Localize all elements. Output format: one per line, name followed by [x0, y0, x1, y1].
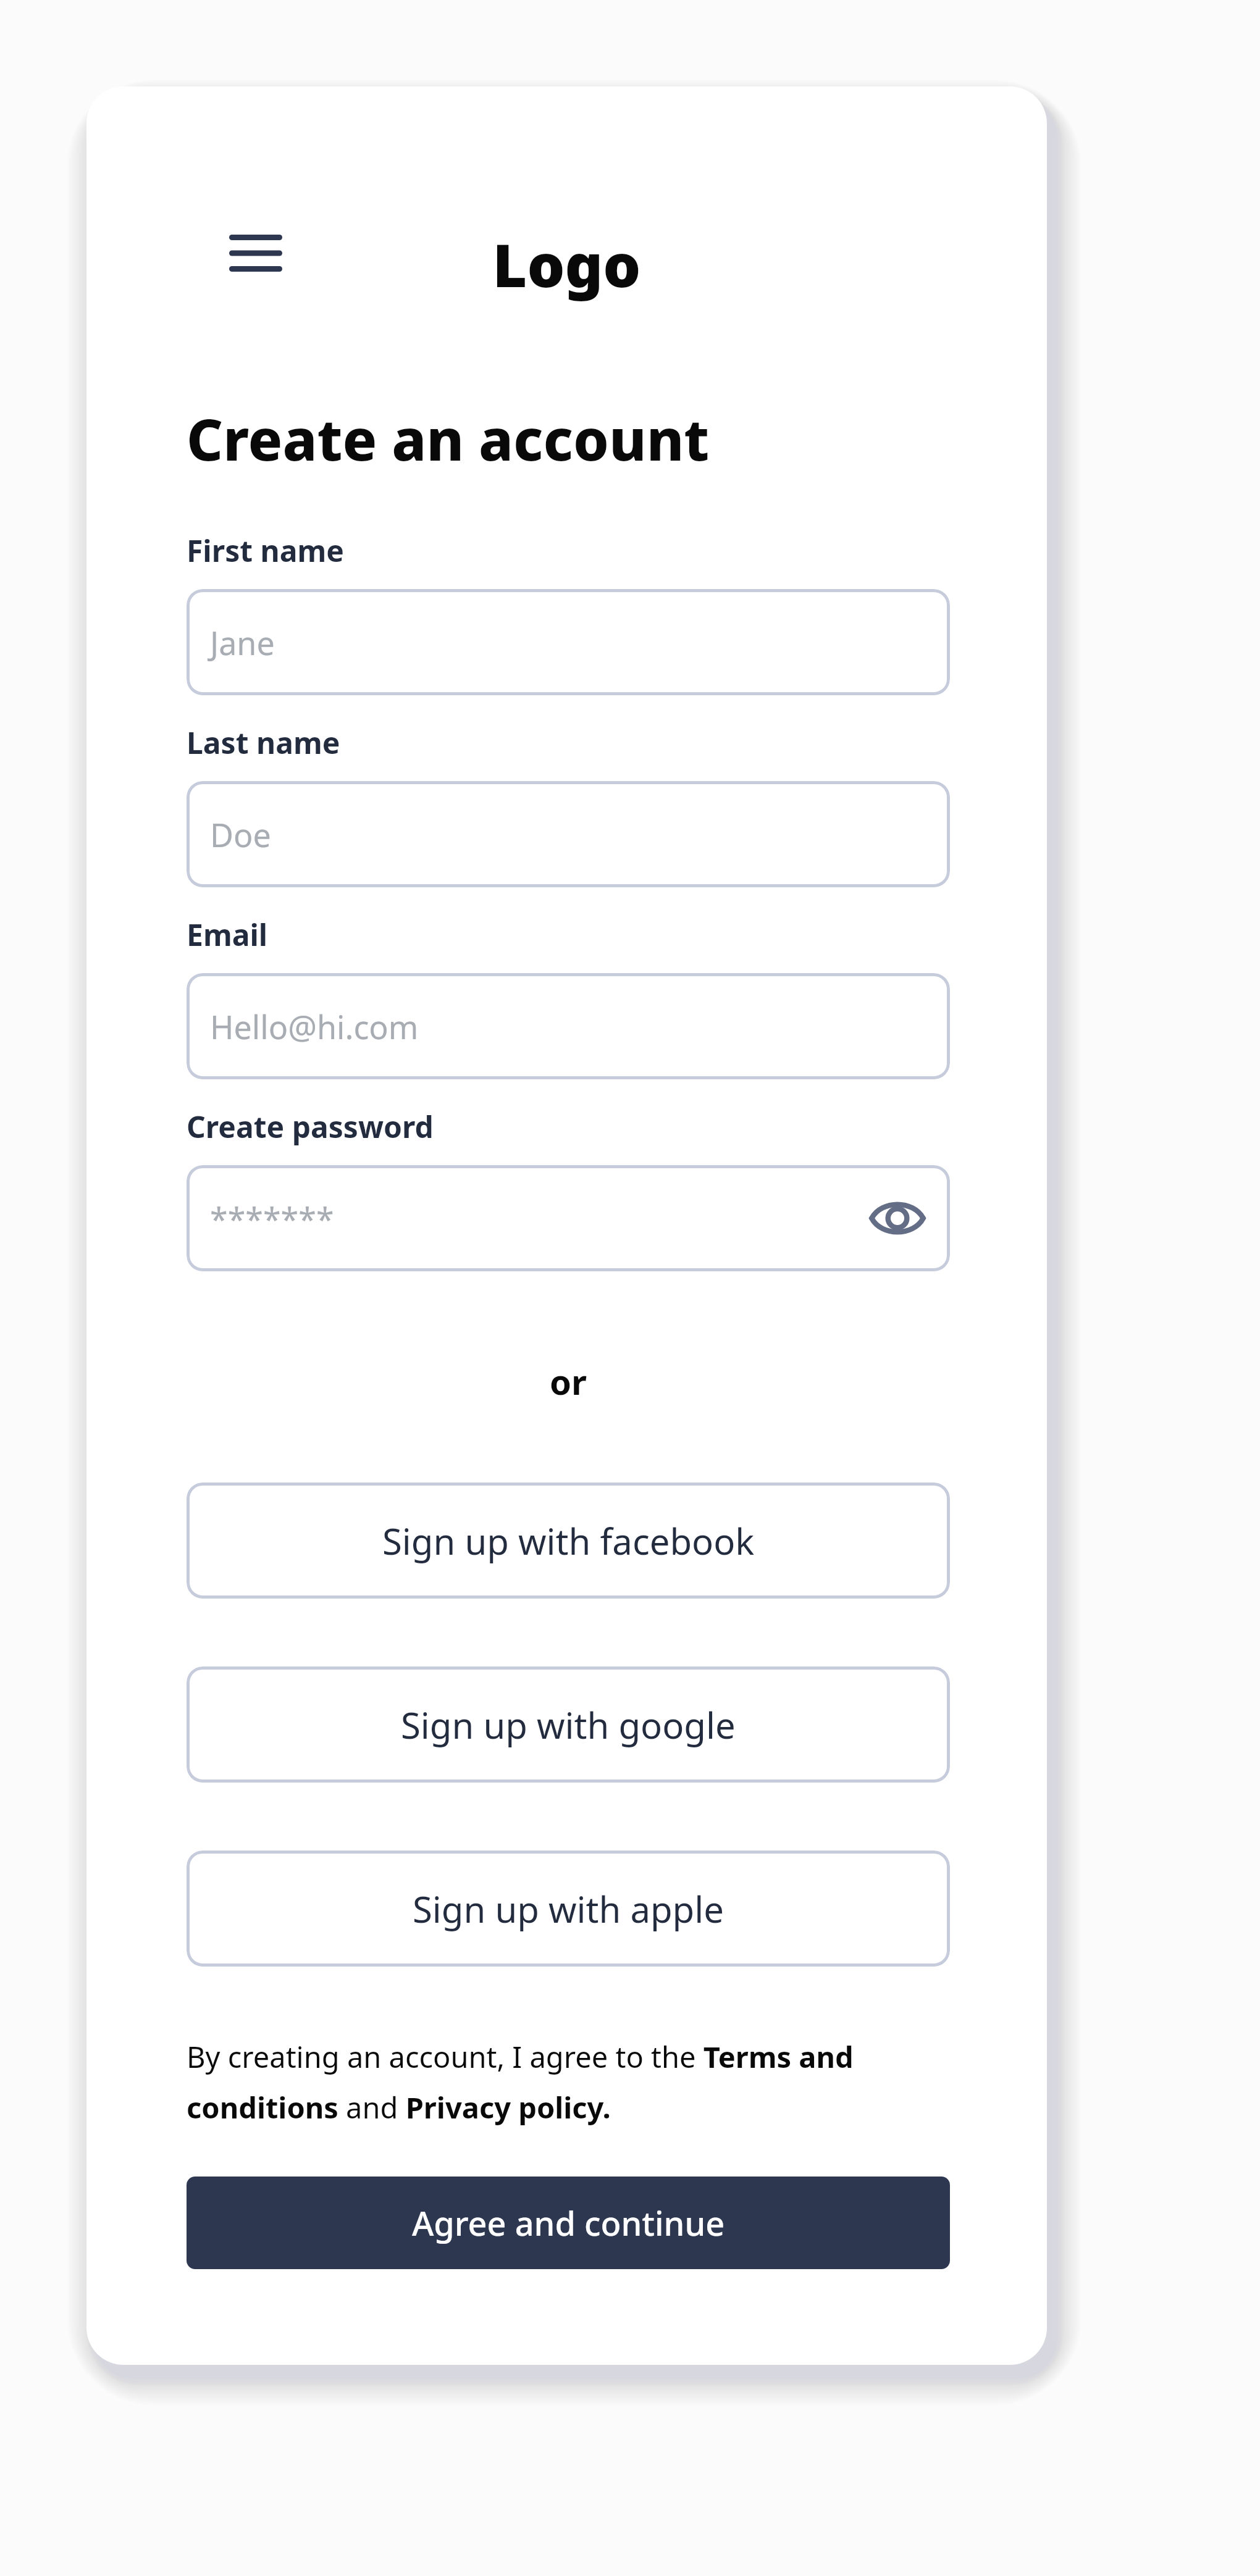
button[interactable]: By creating an account, I agree to the T… — [187, 2037, 950, 2127]
button[interactable]: Sign up with google — [187, 1666, 950, 1783]
staticText: Create password — [187, 1106, 434, 1147]
staticText: Sign up with apple — [413, 1884, 724, 1933]
staticText: Logo — [86, 224, 1047, 304]
staticText: Email — [187, 914, 268, 955]
staticText: First name — [187, 530, 344, 571]
staticText: Hello@hi.com — [210, 1005, 419, 1048]
button[interactable]: Show password — [863, 1184, 931, 1252]
button[interactable]: Sign up with apple — [187, 1850, 950, 1967]
staticText: Jane — [210, 621, 275, 664]
staticText: Agree and continue — [412, 2200, 725, 2246]
button[interactable]: Agree and continue — [187, 2177, 950, 2269]
staticText: Create an account — [187, 400, 710, 477]
button[interactable]: Jane — [187, 589, 950, 695]
button[interactable]: ******* — [187, 1165, 950, 1271]
staticText: Sign up with google — [401, 1700, 736, 1749]
staticText: ******* — [210, 1197, 334, 1240]
button[interactable]: Sign up with facebook — [187, 1482, 950, 1599]
button[interactable]: Doe — [187, 781, 950, 887]
staticText: Doe — [210, 813, 271, 856]
staticText: or — [187, 1358, 950, 1405]
button[interactable]: Open navigation menu — [210, 207, 301, 299]
staticText: Sign up with facebook — [382, 1516, 755, 1565]
button[interactable]: Hello@hi.com — [187, 973, 950, 1079]
staticText: Last name — [187, 722, 340, 763]
